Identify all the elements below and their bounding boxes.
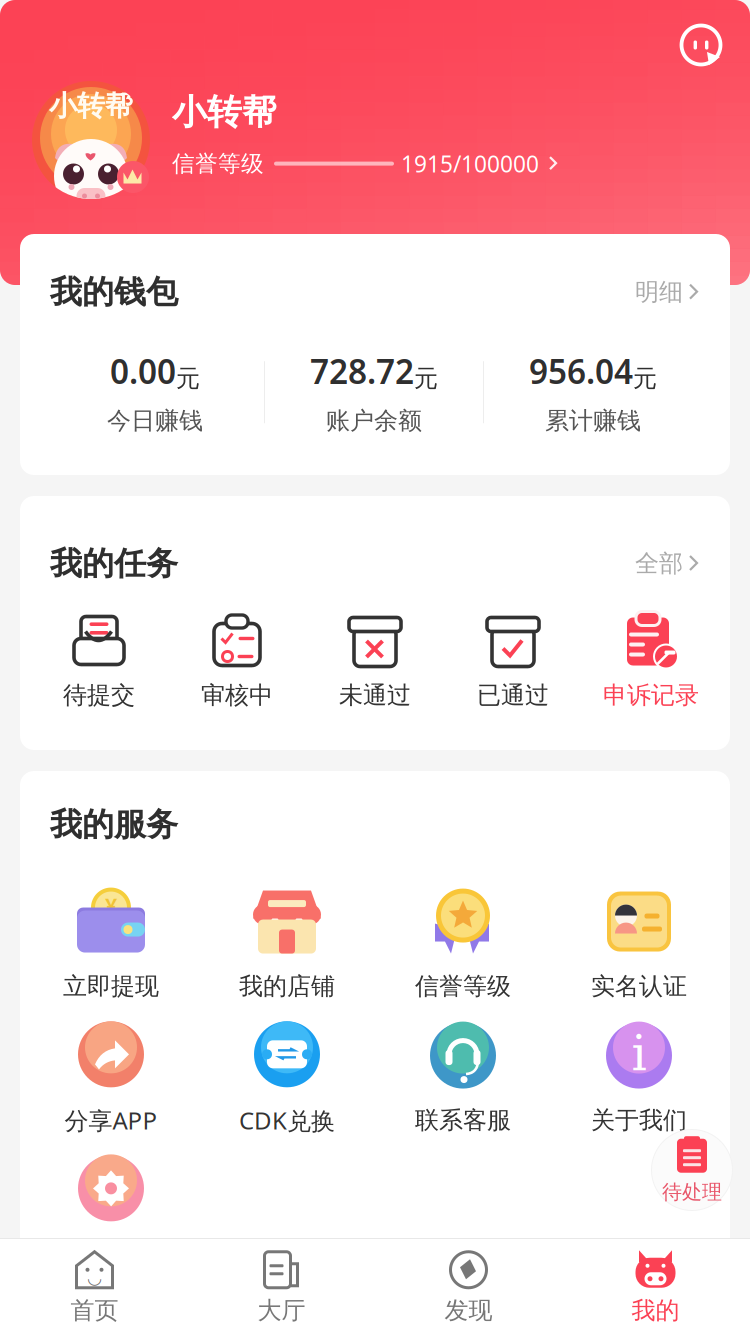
staticText: 累计赚钱	[545, 406, 641, 436]
staticText: 1915/100000	[401, 149, 539, 179]
staticText: 728.72	[310, 349, 414, 393]
button[interactable]: 待提交	[30, 607, 168, 717]
button[interactable]: 全部	[635, 543, 700, 584]
button[interactable]: 审核中	[168, 607, 306, 717]
button[interactable]: 大厅	[188, 1239, 375, 1334]
button[interactable]: 信誉等级	[375, 876, 551, 1010]
staticText: 小转帮	[49, 89, 133, 123]
staticText: 立即提现	[63, 972, 159, 1001]
staticText: CDK兑换	[239, 1104, 335, 1136]
button[interactable]: 信誉等级	[172, 143, 559, 185]
staticText: 信誉等级	[415, 972, 511, 1001]
button[interactable]: 申诉记录	[582, 607, 720, 717]
staticText: 联系客服	[415, 1106, 511, 1135]
staticText: 我的	[631, 1296, 679, 1325]
staticText: 元	[414, 364, 438, 393]
button[interactable]: CDK兑换	[199, 1010, 375, 1144]
button[interactable]: Messages	[678, 22, 724, 68]
button[interactable]: 联系客服	[375, 1010, 551, 1144]
staticText: 我的钱包	[50, 272, 178, 312]
staticText: 今日赚钱	[107, 406, 203, 436]
staticText: 0.00	[110, 349, 176, 393]
staticText: 分享APP	[64, 1104, 157, 1136]
staticText: 发现	[444, 1296, 492, 1325]
staticText: 大厅	[257, 1296, 305, 1325]
button[interactable]: i	[551, 1010, 727, 1144]
staticText: 待处理	[662, 1180, 722, 1204]
button[interactable]: ◡	[1, 1239, 188, 1334]
staticText: 小转帮	[172, 91, 277, 134]
button[interactable]: 明细	[635, 271, 700, 313]
staticText: 首页	[70, 1296, 118, 1325]
staticText: 我的服务	[50, 805, 178, 844]
staticText: 审核中	[201, 680, 273, 710]
button[interactable]: 实名认证	[551, 876, 727, 1010]
button[interactable]: 我的	[562, 1239, 749, 1334]
staticText: ¥	[105, 891, 117, 920]
button[interactable]: ¥	[23, 876, 199, 1010]
staticText: 956.04	[529, 349, 633, 393]
button[interactable]: 未通过	[306, 607, 444, 717]
button[interactable]	[23, 1144, 199, 1278]
staticText: 我的任务	[50, 544, 178, 583]
staticText: 申诉记录	[603, 680, 699, 710]
staticText: 元	[176, 364, 200, 393]
staticText: i	[631, 1026, 646, 1081]
button[interactable]: 待处理	[651, 1129, 733, 1211]
button[interactable]: 分享APP	[23, 1010, 199, 1144]
button[interactable]: 发现	[375, 1239, 562, 1334]
staticText: 信誉等级	[172, 150, 264, 177]
staticText: 元	[633, 364, 657, 393]
staticText: 待提交	[63, 680, 135, 710]
staticText: 已通过	[477, 680, 549, 710]
button[interactable]: 已通过	[444, 607, 582, 717]
staticText: 全部	[635, 549, 683, 578]
staticText: 我的店铺	[239, 972, 335, 1001]
staticText: 关于我们	[591, 1106, 687, 1135]
staticText: ◡	[87, 1268, 102, 1288]
button[interactable]: 我的店铺	[199, 876, 375, 1010]
staticText: 账户余额	[326, 406, 422, 436]
staticText: 明细	[635, 277, 683, 307]
staticText: 未通过	[339, 680, 411, 710]
staticText: 实名认证	[591, 972, 687, 1001]
